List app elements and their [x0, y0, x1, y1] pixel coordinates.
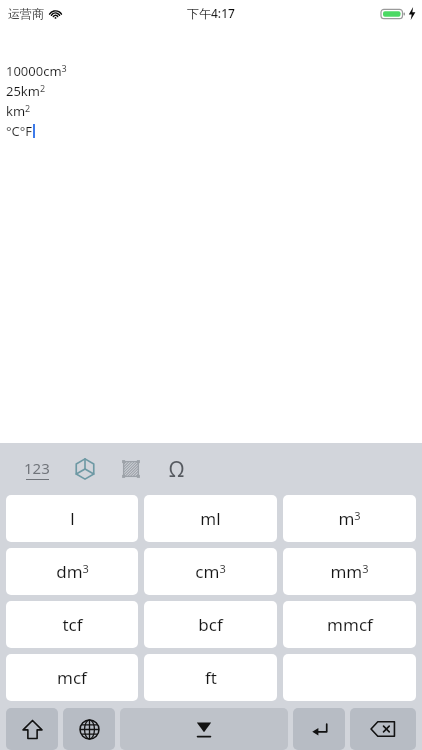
- staticText: Ω: [169, 455, 185, 484]
- button[interactable]: m3: [283, 495, 416, 542]
- button[interactable]: Switch keyboard: [63, 708, 115, 750]
- button[interactable]: l: [6, 495, 138, 542]
- button[interactable]: tcf: [6, 601, 138, 648]
- staticText: 10000cm3: [6, 62, 67, 80]
- button[interactable]: Hide keyboard: [120, 708, 288, 750]
- button[interactable]: Numbers: [16, 451, 58, 487]
- button[interactable]: Shift: [6, 708, 58, 750]
- staticText: l: [70, 507, 75, 530]
- staticText: °C°F: [6, 122, 33, 140]
- staticText: 运营商: [8, 6, 44, 21]
- button[interactable]: mmcf: [283, 601, 416, 648]
- staticText: 25km2: [6, 82, 46, 100]
- staticText: mm3: [330, 560, 369, 583]
- staticText: m3: [338, 507, 361, 530]
- staticText: 123: [24, 458, 50, 478]
- button[interactable]: ft: [144, 654, 277, 701]
- button[interactable]: dm3: [6, 548, 138, 595]
- staticText: bcf: [198, 613, 223, 636]
- button[interactable]: mm3: [283, 548, 416, 595]
- button[interactable]: Volume units: [64, 451, 106, 487]
- button[interactable]: cm3: [144, 548, 277, 595]
- button[interactable]: Other symbols: [156, 451, 198, 487]
- button[interactable]: Backspace: [350, 708, 416, 750]
- staticText: mcf: [57, 666, 87, 689]
- button[interactable]: Return: [293, 708, 345, 750]
- button[interactable]: bcf: [144, 601, 277, 648]
- staticText: km2: [6, 102, 31, 120]
- staticText: ft: [205, 666, 217, 689]
- staticText: 下午4:17: [187, 5, 235, 21]
- staticText: tcf: [62, 613, 83, 636]
- staticText: cm3: [195, 560, 226, 583]
- button[interactable]: ml: [144, 495, 277, 542]
- button[interactable]: Area units: [110, 451, 152, 487]
- staticText: mmcf: [327, 613, 373, 636]
- button[interactable]: mcf: [6, 654, 138, 701]
- staticText: dm3: [56, 560, 89, 583]
- staticText: ml: [200, 507, 221, 530]
